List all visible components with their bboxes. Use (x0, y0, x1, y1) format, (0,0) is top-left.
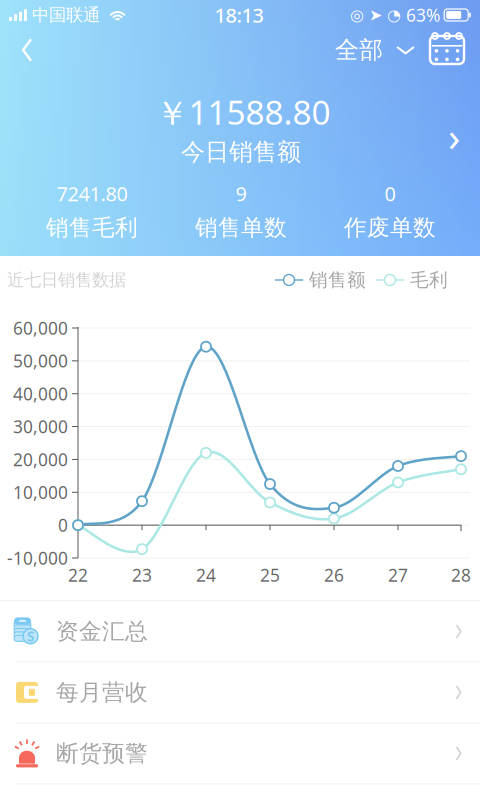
staticText: -10,000 (7, 546, 68, 569)
staticText: 今日销售额 (181, 137, 301, 167)
staticText: 每月营收 (56, 678, 148, 706)
staticText: 30,000 (13, 415, 68, 438)
staticText: 20,000 (13, 448, 68, 471)
staticText: 销售额 (309, 268, 366, 291)
staticText: 断货预警 (56, 739, 148, 767)
staticText: 销售单数 (195, 214, 287, 242)
staticText: 25 (260, 563, 280, 586)
staticText: 9 (235, 180, 246, 207)
staticText: 28 (451, 563, 471, 586)
button[interactable]: S (0, 601, 480, 661)
staticText: 26 (324, 563, 344, 586)
staticText: › (448, 109, 460, 162)
staticText: 10,000 (13, 481, 68, 504)
staticText: 0 (384, 180, 395, 207)
staticText: 27 (388, 563, 408, 586)
button[interactable]: Details (434, 116, 474, 156)
button[interactable]: 每月营收 (0, 662, 480, 722)
staticText: 资金汇总 (56, 617, 148, 645)
button[interactable]: 断货预警 (0, 723, 480, 783)
staticText: 作废单数 (344, 214, 436, 242)
staticText: 全部 (335, 35, 383, 65)
staticText: 63% (406, 3, 440, 26)
staticText: 40,000 (13, 382, 68, 405)
staticText: ◎ ➤ ◔ (350, 6, 401, 24)
button[interactable]: Back (6, 29, 48, 71)
staticText: 50,000 (13, 349, 68, 372)
button[interactable]: 全部 (327, 29, 424, 71)
staticText: 23 (132, 563, 152, 586)
staticText: 毛利 (410, 268, 448, 291)
staticText: 60,000 (13, 316, 68, 339)
staticText: 中国联通 (32, 4, 100, 26)
staticText: S (27, 627, 34, 645)
staticText: 销售毛利 (46, 214, 138, 242)
staticText: 近七日销售数据 (7, 269, 126, 291)
staticText: 18:13 (214, 2, 263, 28)
staticText: 0 (58, 514, 68, 537)
staticText: 7241.80 (56, 180, 127, 207)
staticText: 22 (68, 563, 88, 586)
staticText: ￥11588.80 (155, 90, 330, 134)
staticText: 24 (196, 563, 216, 586)
button[interactable]: Calendar (424, 29, 470, 71)
